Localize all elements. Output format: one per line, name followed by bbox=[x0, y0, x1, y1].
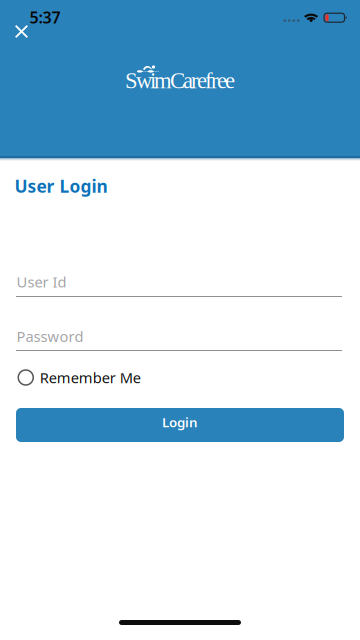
staticText: Remember Me bbox=[40, 368, 141, 387]
button[interactable]: User Id bbox=[16, 270, 344, 298]
button[interactable]: Remember Me bbox=[18, 368, 141, 387]
staticText: User Id bbox=[16, 272, 66, 291]
staticText: Login bbox=[162, 413, 198, 431]
staticText: User Login bbox=[14, 174, 107, 197]
staticText: 5:37 bbox=[29, 7, 60, 28]
staticText: SwimCarefree bbox=[125, 68, 235, 93]
button[interactable]: Close bbox=[6, 16, 36, 46]
staticText: Password bbox=[16, 326, 83, 346]
button[interactable]: Login bbox=[16, 408, 344, 442]
button[interactable]: Password bbox=[16, 324, 344, 352]
